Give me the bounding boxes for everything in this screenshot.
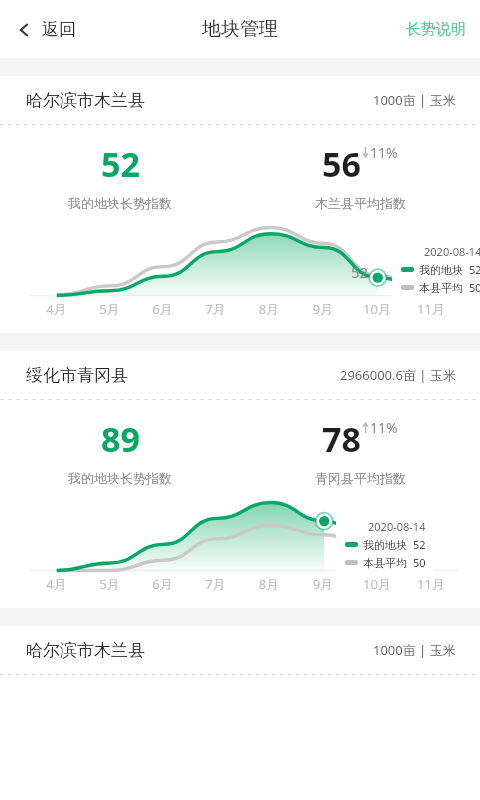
staticText: 哈尔滨市木兰县 xyxy=(26,90,145,111)
staticText: 青冈县平均指数 xyxy=(315,470,406,486)
staticText: 地块管理 xyxy=(202,17,278,41)
staticText: 8月 xyxy=(242,575,296,593)
staticText: 50 xyxy=(469,280,480,295)
staticText: 绥化市青冈县 xyxy=(26,365,128,386)
staticText: 木兰县平均指数 xyxy=(315,195,406,211)
staticText: 5月 xyxy=(83,300,136,318)
staticText: 50 xyxy=(413,555,426,570)
staticText: 78 xyxy=(322,416,361,462)
staticText: 10月 xyxy=(350,575,404,593)
staticText: 11月 xyxy=(404,575,458,593)
staticText: 7月 xyxy=(189,575,242,593)
staticText: 2020-08-14 xyxy=(368,519,426,534)
staticText: 4月 xyxy=(30,575,83,593)
staticText: 6月 xyxy=(136,575,189,593)
staticText: 7月 xyxy=(189,300,242,318)
button[interactable]: 哈尔滨市木兰县 xyxy=(0,76,480,333)
staticText: 89 xyxy=(101,416,140,462)
staticText: 本县平均 xyxy=(419,281,463,295)
staticText: 我的地块长势指数 xyxy=(68,470,172,486)
staticText: 我的地块 xyxy=(363,538,407,552)
staticText: 4月 xyxy=(30,300,83,318)
staticText: 8月 xyxy=(242,300,296,318)
staticText: 6月 xyxy=(136,300,189,318)
staticText: 52 xyxy=(101,141,140,187)
button[interactable]: 绥化市青冈县 xyxy=(0,351,480,608)
staticText: 52 xyxy=(351,262,369,282)
staticText: 我的地块长势指数 xyxy=(68,195,172,211)
staticText: 9月 xyxy=(296,575,350,593)
button[interactable]: 哈尔滨市木兰县 xyxy=(0,626,480,675)
button[interactable]: 返回 xyxy=(10,11,84,48)
staticText: 11% xyxy=(370,418,398,437)
staticText: 长势说明 xyxy=(406,20,466,39)
staticText: 本县平均 xyxy=(363,556,407,570)
staticText: 10月 xyxy=(350,300,404,318)
staticText: 我的地块 xyxy=(419,263,463,277)
staticText: 9月 xyxy=(296,300,350,318)
staticText: 56 xyxy=(322,141,361,187)
staticText: 52 xyxy=(469,262,480,277)
staticText: 11月 xyxy=(404,300,458,318)
staticText: 哈尔滨市木兰县 xyxy=(26,640,145,661)
staticText: 1000亩 | 玉米 xyxy=(373,91,456,109)
staticText: 5月 xyxy=(83,575,136,593)
staticText: 2966000.6亩 | 玉米 xyxy=(340,366,456,384)
staticText: 1000亩 | 玉米 xyxy=(373,641,456,659)
staticText: 52 xyxy=(413,537,426,552)
button[interactable]: 长势说明 xyxy=(398,12,474,47)
staticText: 返回 xyxy=(42,19,76,40)
staticText: 11% xyxy=(370,143,398,162)
staticText: 2020-08-14 xyxy=(424,244,480,259)
